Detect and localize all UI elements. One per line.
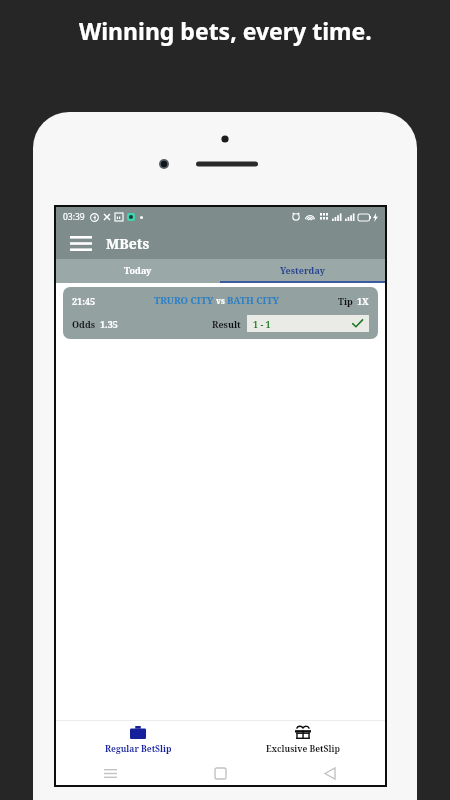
button[interactable]: Regular BetSlip (56, 721, 220, 761)
staticText: TRURO CITY (154, 294, 214, 307)
staticText: MBets (106, 234, 150, 253)
staticText: Odds (72, 318, 96, 330)
staticText: Winning bets, every time. (79, 15, 372, 46)
staticText: 1 - 1 (253, 318, 271, 330)
button[interactable]: Today (56, 259, 220, 281)
button[interactable]: Open navigation menu (66, 228, 96, 258)
staticText: Today (124, 264, 152, 276)
staticText: 03:39 (63, 211, 85, 223)
staticText: 21:45 (72, 295, 96, 307)
staticText: vs (214, 295, 227, 306)
button[interactable]: Yesterday (220, 259, 385, 281)
staticText: BATH CITY (227, 294, 280, 307)
button[interactable]: 21:45 (63, 287, 378, 339)
staticText: 1.35 (100, 318, 118, 330)
staticText: Yesterday (280, 264, 325, 276)
staticText: Tip (338, 295, 353, 307)
staticText: Regular BetSlip (105, 743, 172, 755)
staticText: 1X (357, 295, 369, 307)
button[interactable]: Exclusive BetSlip (220, 721, 385, 761)
staticText: Exclusive BetSlip (266, 743, 340, 755)
staticText: Result (212, 318, 241, 330)
